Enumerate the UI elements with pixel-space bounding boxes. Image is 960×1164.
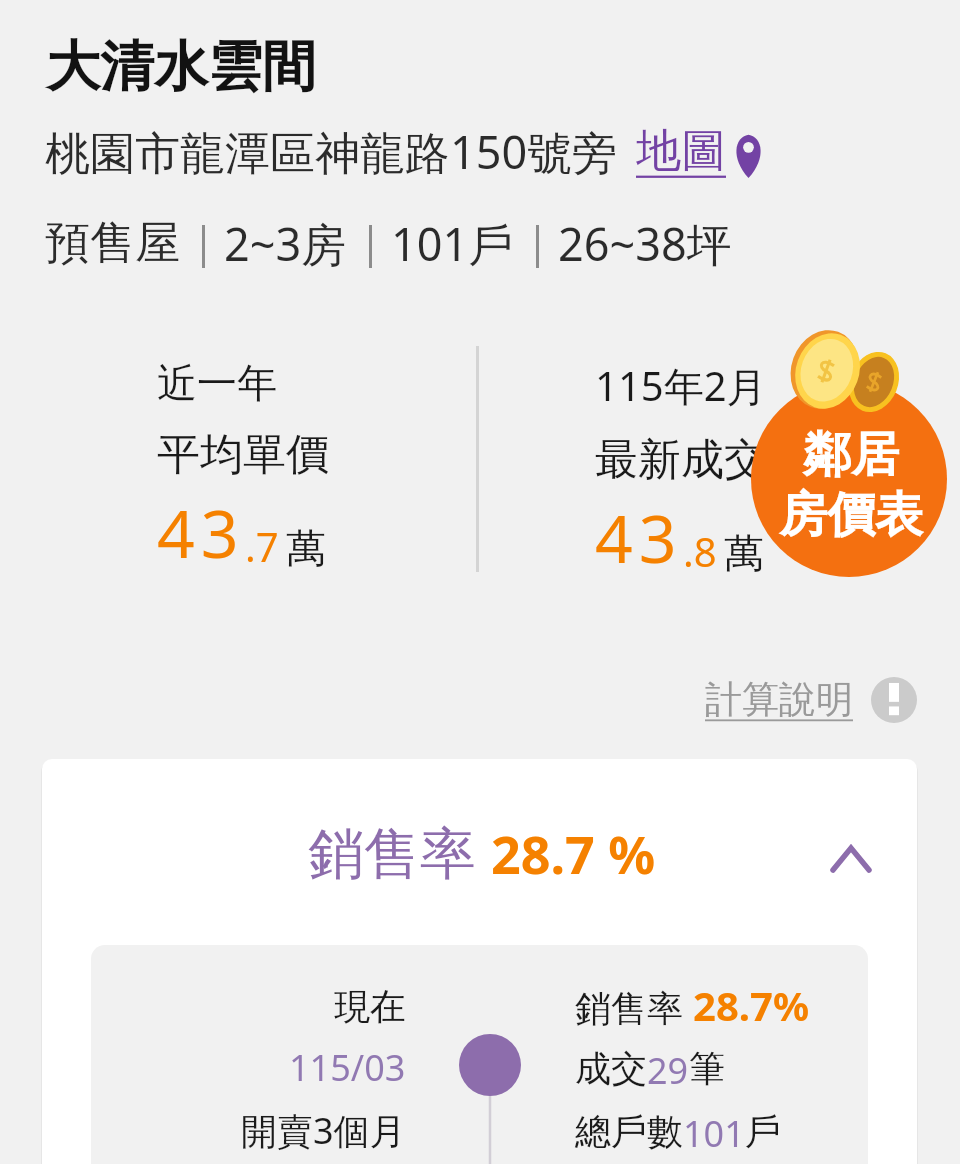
staticText: 銷售率 [575, 983, 693, 1032]
staticText: 101戶 [391, 213, 514, 274]
staticText: 總戶數 [575, 1109, 683, 1154]
staticText: 萬 [286, 523, 326, 573]
staticText: 28.7% [693, 978, 809, 1032]
staticText: .7 [245, 519, 279, 573]
staticText: .8 [683, 524, 717, 578]
staticText: 平均單價 [157, 428, 329, 482]
staticText: 萬 [724, 528, 764, 578]
staticText: 現在 [334, 984, 406, 1029]
button[interactable]: 鄰居房價表 [745, 315, 960, 590]
staticText: 桃園市龍潭區神龍路150號旁 [45, 121, 618, 182]
staticText: 2~3房 [224, 213, 347, 274]
staticText: 115年2月 [595, 358, 767, 413]
staticText: 成交 [575, 1046, 647, 1091]
staticText: 43 [157, 487, 245, 577]
button[interactable]: 計算說明 [705, 676, 917, 723]
staticText: 開賣3個月 [241, 1106, 406, 1155]
staticText: 戶 [745, 1109, 781, 1154]
button[interactable]: 地圖 [636, 123, 763, 180]
staticText: 26~38坪 [558, 213, 732, 274]
staticText: 預售屋 [45, 215, 180, 272]
staticText: 筆 [689, 1046, 725, 1091]
staticText: 鄰居 [803, 425, 899, 485]
button[interactable]: 銷售率 28.7 % 收合 [42, 759, 917, 945]
staticText: 計算說明 [705, 676, 853, 723]
staticText: 近一年 [157, 358, 277, 408]
staticText: 最新成交 [595, 433, 767, 487]
staticText: 地圖 [636, 123, 726, 180]
staticText: 43 [595, 492, 683, 582]
staticText: 房價表 [779, 485, 923, 545]
staticText: 115/03 [289, 1043, 406, 1092]
staticText: 28.7 % [491, 818, 656, 889]
staticText: 101 [683, 1109, 745, 1158]
staticText: 大清水雲間 [46, 33, 316, 101]
staticText: 29 [647, 1046, 689, 1095]
staticText: 銷售率 [308, 813, 491, 889]
